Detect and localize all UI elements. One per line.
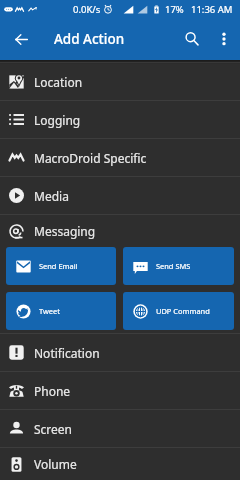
staticText: Tweet [39,306,60,316]
button[interactable]: Media [0,177,240,214]
button[interactable]: Phone [0,372,240,409]
button[interactable]: Volume [0,448,240,480]
staticText: Phone [34,383,71,399]
staticText: Location [34,74,83,90]
button[interactable]: Back [9,27,33,51]
button[interactable]: Location [0,63,240,100]
staticText: UDP Command [156,306,210,316]
button[interactable]: Notification [0,334,240,371]
button[interactable]: Tweet [6,292,116,330]
staticText: Send SMS [156,261,191,271]
staticText: Messaging [34,223,96,239]
button[interactable]: Send SMS [123,247,234,285]
button[interactable]: More options [212,27,236,51]
staticText: Notification [34,345,100,361]
staticText: 0.0K/s [73,3,101,16]
staticText: Send Email [39,261,78,271]
staticText: Logging [34,112,81,128]
button[interactable]: Send Email [6,247,116,285]
staticText: MacroDroid Specific [34,150,147,166]
staticText: Add Action [54,30,125,48]
button[interactable]: UDP Command [123,292,234,330]
staticText: Screen [34,421,73,437]
button[interactable]: Messaging [0,215,240,247]
button[interactable]: Screen [0,410,240,447]
button[interactable]: Search [180,27,204,51]
staticText: 17% [165,3,184,16]
button[interactable]: Logging [0,101,240,138]
staticText: Media [34,188,69,204]
staticText: Volume [34,456,77,472]
button[interactable]: MacroDroid Specific [0,139,240,176]
staticText: 11:36 AM [191,3,233,16]
